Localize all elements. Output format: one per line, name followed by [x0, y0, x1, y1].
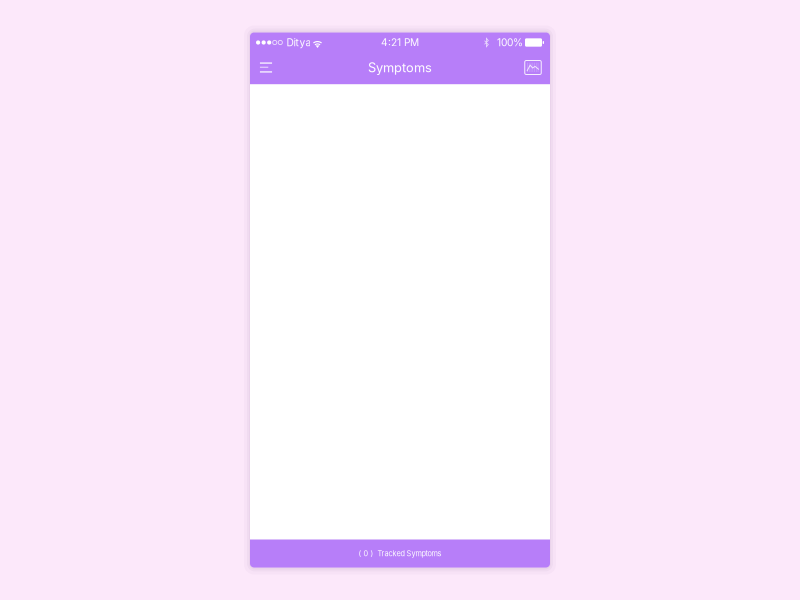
button[interactable]: ( 0 ) Tracked Symptoms [250, 539, 550, 567]
staticText: 100% [497, 36, 523, 49]
staticText: Symptoms [368, 60, 432, 75]
button[interactable]: Chart [516, 52, 550, 83]
staticText: Ditya [286, 36, 311, 49]
staticText: ( 0 ) Tracked Symptoms [358, 549, 441, 558]
button[interactable]: Menu [250, 52, 282, 83]
staticText: 4:21 PM [381, 36, 419, 49]
